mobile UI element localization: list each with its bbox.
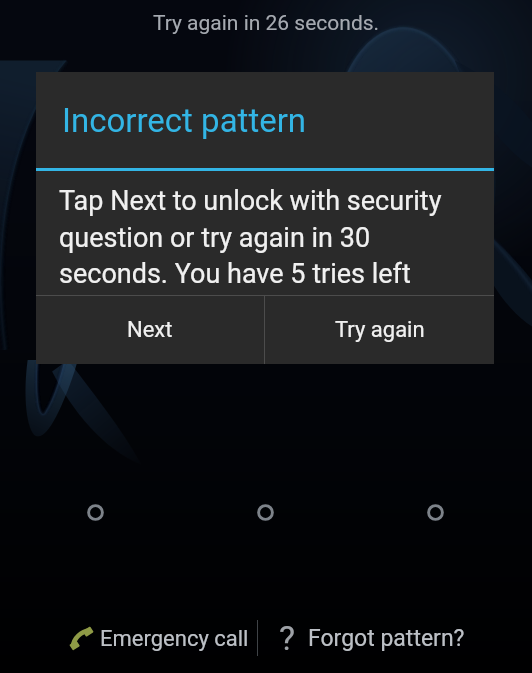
staticText: Emergency call bbox=[100, 626, 249, 652]
staticText: Incorrect pattern bbox=[62, 101, 307, 140]
button[interactable]: ? bbox=[258, 618, 475, 658]
staticText: Forgot pattern? bbox=[308, 625, 465, 652]
button[interactable]: Next bbox=[36, 296, 264, 364]
staticText: Try again bbox=[335, 317, 425, 343]
staticText: ? bbox=[279, 618, 296, 658]
staticText: Try again in 26 seconds. bbox=[0, 11, 532, 36]
button[interactable]: Emergency call bbox=[58, 625, 257, 652]
button[interactable]: Try again bbox=[265, 296, 494, 364]
staticText: Next bbox=[127, 317, 173, 343]
staticText: Tap Next to unlock with security questio… bbox=[59, 185, 470, 289]
